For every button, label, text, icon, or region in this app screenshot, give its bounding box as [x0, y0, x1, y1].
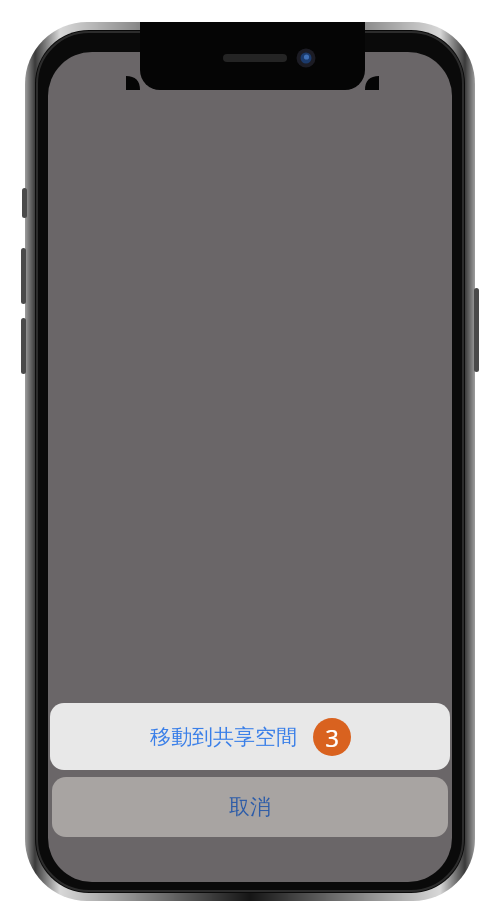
button[interactable]: 移動到共享空間 — [50, 703, 450, 770]
button[interactable]: 取消 — [52, 777, 448, 837]
staticText: 取消 — [229, 794, 271, 820]
staticText: 移動到共享空間 — [150, 724, 297, 750]
staticText: 3 — [325, 721, 339, 754]
